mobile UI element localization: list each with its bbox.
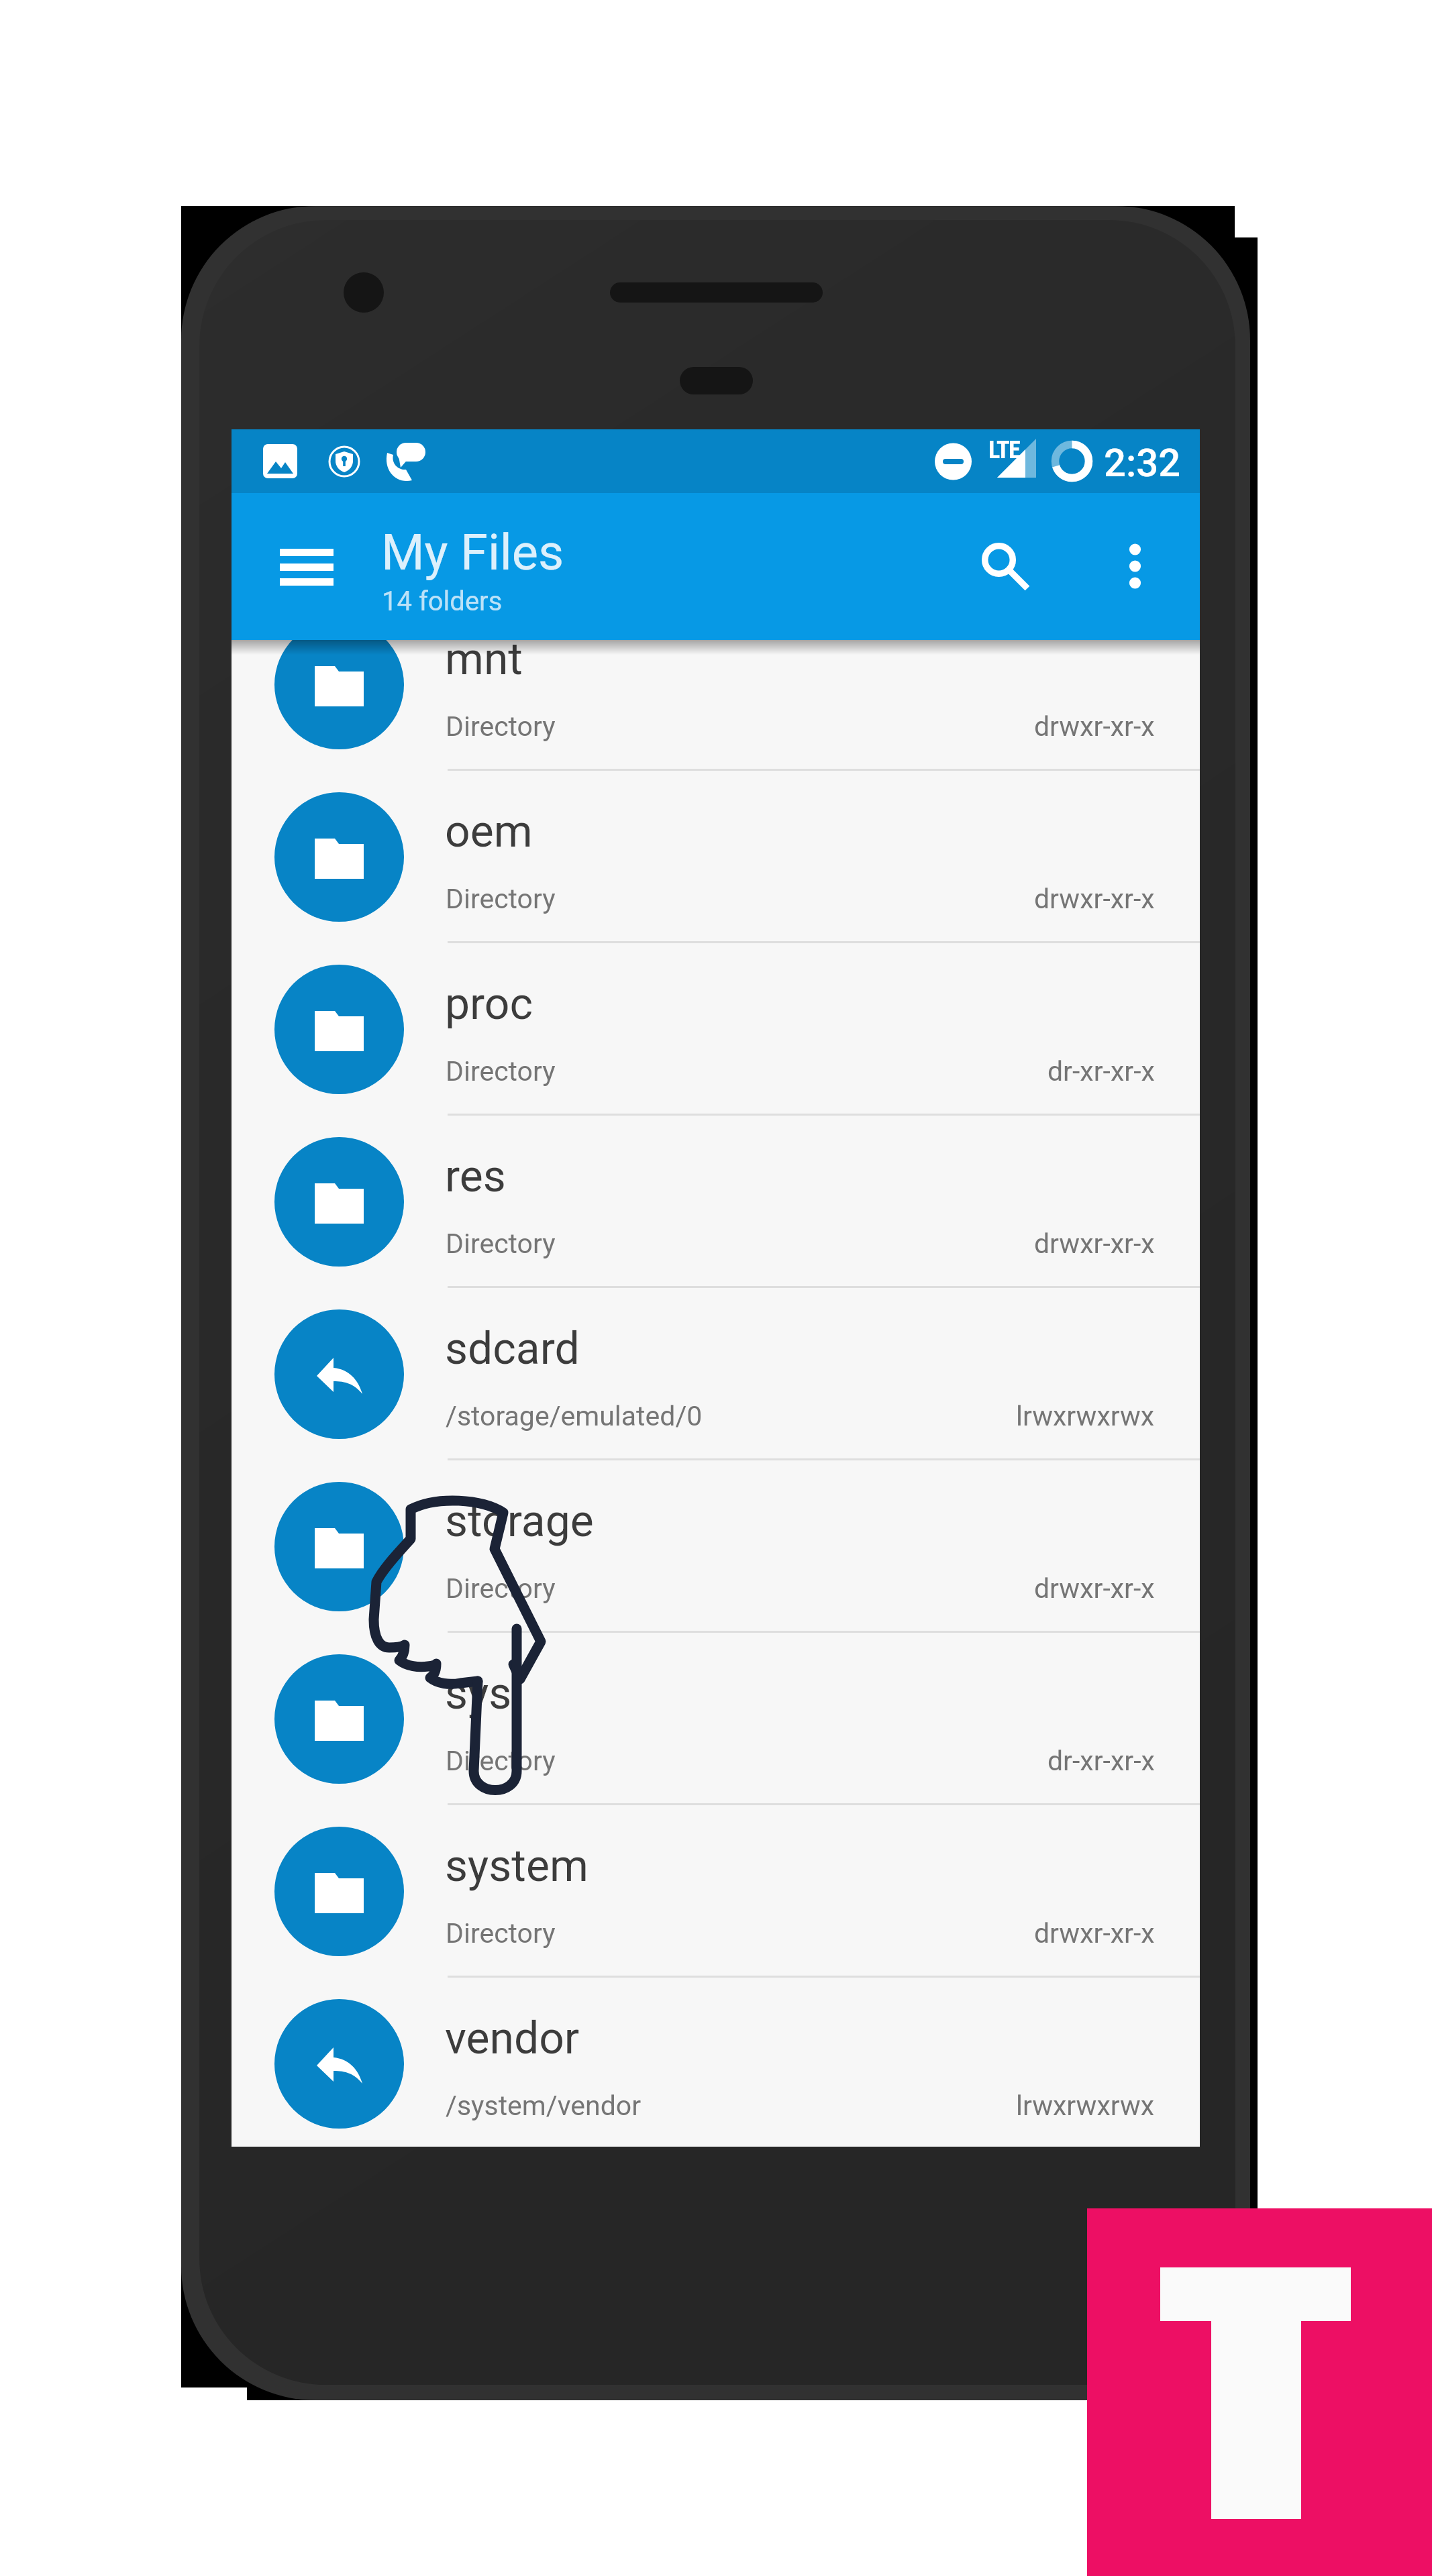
staticText: /system/vendor [446, 2090, 642, 2122]
button[interactable]: system [232, 1805, 1200, 1978]
staticText: LTE [988, 436, 1020, 464]
staticText: oem [445, 806, 533, 857]
staticText: system [445, 1840, 589, 1892]
staticText: drwxr-xr-x [1034, 883, 1155, 915]
staticText: Directory [446, 1917, 556, 1949]
staticText: 2:32 [1104, 440, 1181, 486]
button[interactable]: More options [1088, 510, 1182, 610]
staticText: mnt [445, 633, 523, 685]
button[interactable]: vendor [232, 1978, 1200, 2147]
staticText: dr-xr-xr-x [1047, 1745, 1155, 1777]
button[interactable]: Search [949, 510, 1050, 610]
staticText: /storage/emulated/0 [446, 1400, 703, 1432]
button[interactable]: Open navigation drawer [253, 522, 360, 612]
staticText: 14 folders [382, 586, 503, 617]
staticText: Directory [446, 1745, 556, 1777]
staticText: Directory [446, 1228, 556, 1260]
staticText: drwxr-xr-x [1034, 1228, 1155, 1260]
button[interactable]: oem [232, 771, 1200, 943]
staticText: Directory [446, 1572, 556, 1605]
staticText: drwxr-xr-x [1034, 1917, 1155, 1949]
staticText: sdcard [445, 1323, 580, 1375]
staticText: drwxr-xr-x [1034, 710, 1155, 743]
staticText: Directory [446, 710, 556, 743]
button[interactable]: mnt [232, 598, 1200, 771]
staticText: storage [445, 1495, 594, 1547]
staticText: lrwxrwxrwx [1016, 2090, 1155, 2122]
staticText: proc [445, 978, 533, 1030]
button[interactable]: proc [232, 943, 1200, 1116]
staticText: res [445, 1150, 506, 1202]
staticText: dr-xr-xr-x [1047, 1055, 1155, 1087]
button[interactable]: sdcard [232, 1288, 1200, 1460]
button[interactable]: sys [232, 1633, 1200, 1805]
staticText: lrwxrwxrwx [1016, 1400, 1155, 1432]
staticText: Directory [446, 1055, 556, 1087]
button[interactable]: storage [232, 1460, 1200, 1633]
staticText: sys [445, 1668, 512, 1719]
staticText: vendor [445, 2012, 580, 2064]
staticText: My Files [381, 523, 564, 582]
staticText: Directory [446, 883, 556, 915]
staticText: drwxr-xr-x [1034, 1572, 1155, 1605]
button[interactable]: res [232, 1116, 1200, 1288]
